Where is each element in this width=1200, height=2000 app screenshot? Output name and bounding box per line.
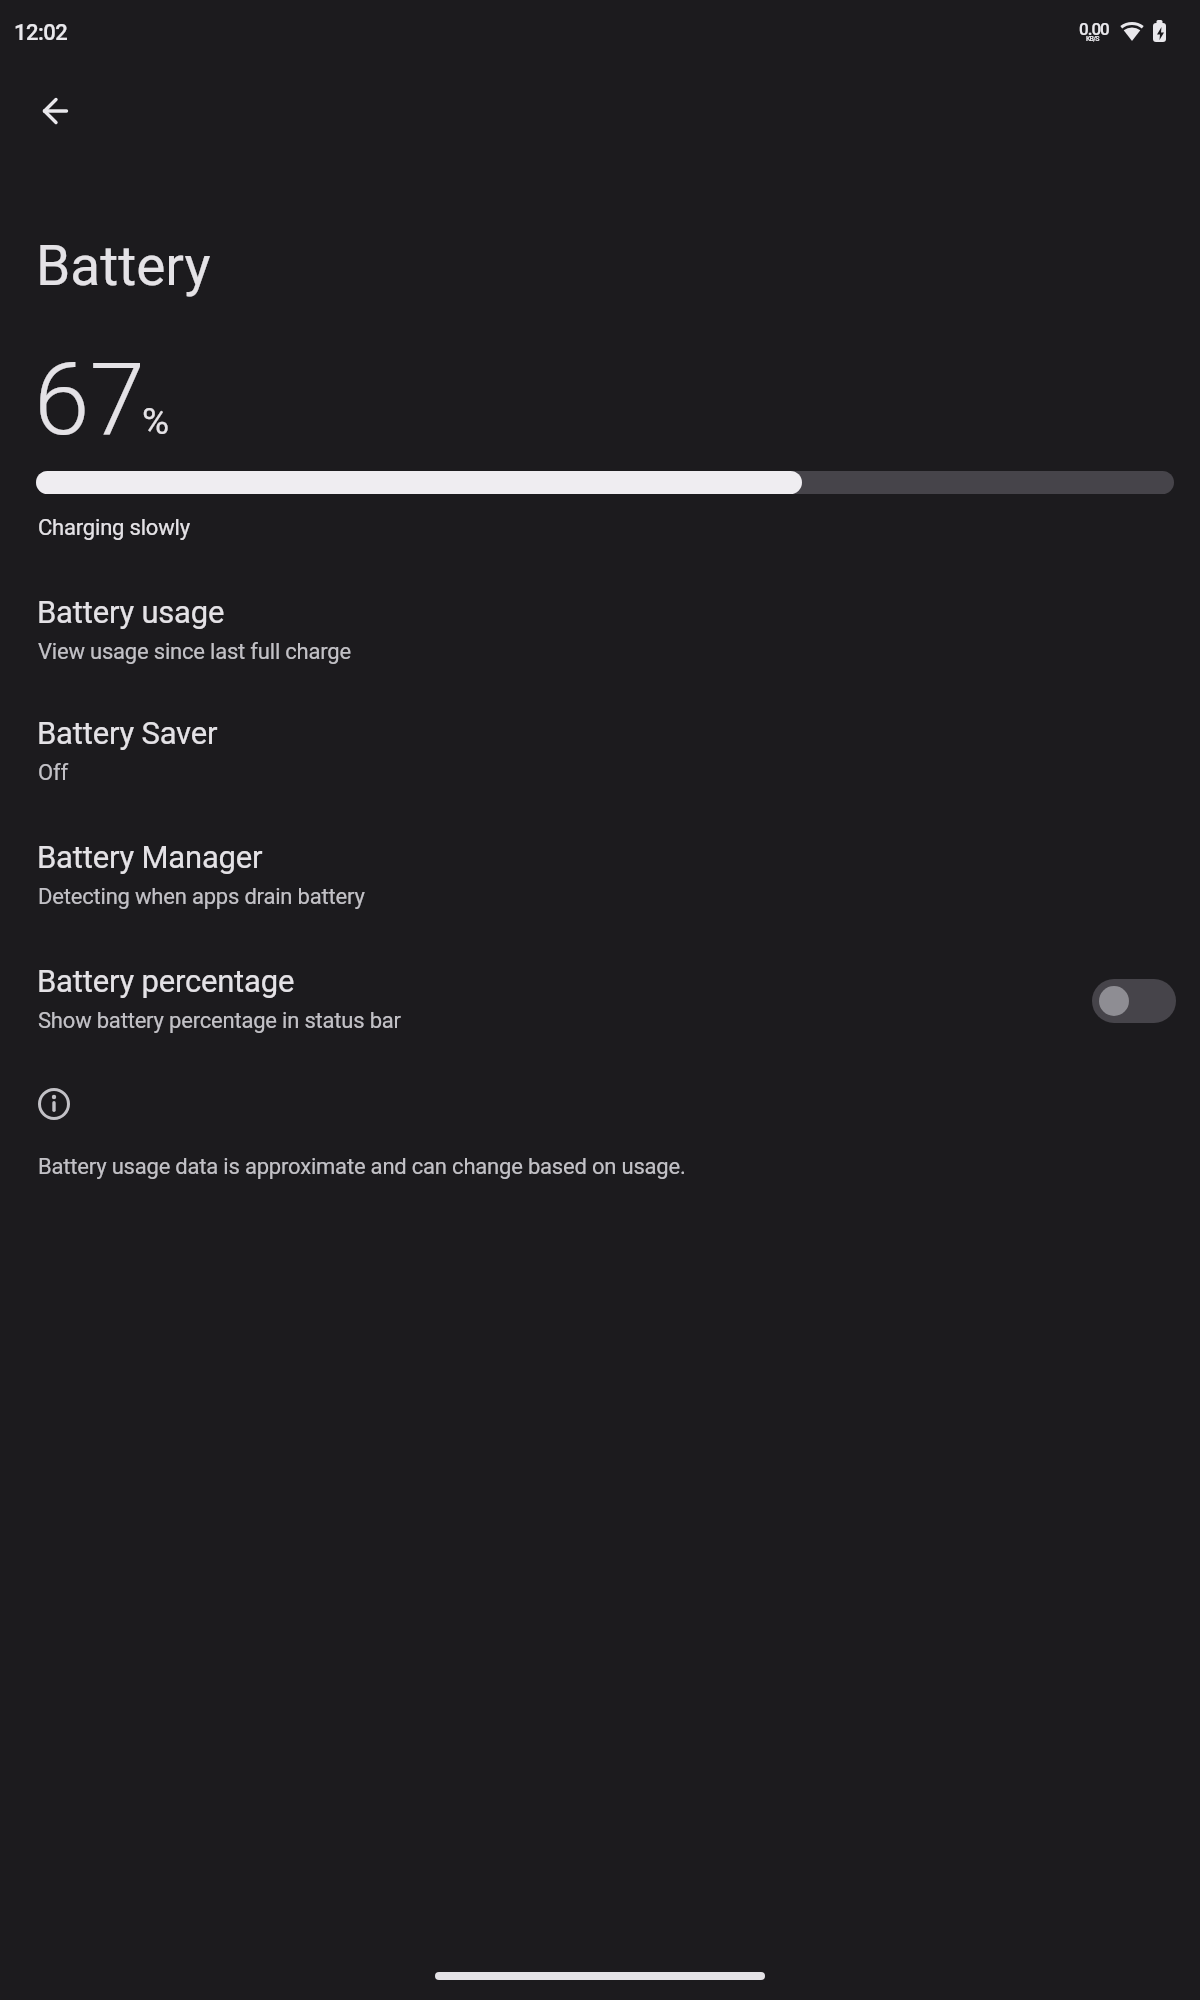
- staticText: 0.00: [1079, 19, 1109, 39]
- staticText: Show battery percentage in status bar: [38, 1008, 401, 1034]
- button[interactable]: Battery Saver: [0, 707, 1200, 815]
- staticText: Off: [38, 760, 68, 786]
- staticText: View usage since last full charge: [38, 639, 351, 665]
- staticText: KB/S: [1086, 35, 1099, 43]
- staticText: Detecting when apps drain battery: [38, 884, 365, 910]
- button[interactable]: Battery Manager: [0, 831, 1200, 939]
- staticText: Battery: [36, 234, 211, 298]
- staticText: Battery Manager: [37, 839, 263, 875]
- staticText: 67: [34, 341, 145, 458]
- staticText: Battery percentage: [37, 963, 295, 999]
- staticText: Battery Saver: [37, 715, 218, 751]
- button[interactable]: Battery percentage: [0, 955, 1200, 1063]
- staticText: 12:02: [14, 20, 68, 46]
- button[interactable]: [1092, 979, 1176, 1023]
- button[interactable]: [31, 87, 79, 135]
- staticText: Charging slowly: [38, 515, 190, 541]
- staticText: Battery usage data is approximate and ca…: [38, 1154, 686, 1180]
- button[interactable]: Battery usage: [0, 586, 1200, 694]
- staticText: %: [142, 400, 170, 443]
- staticText: Battery usage: [37, 594, 225, 630]
